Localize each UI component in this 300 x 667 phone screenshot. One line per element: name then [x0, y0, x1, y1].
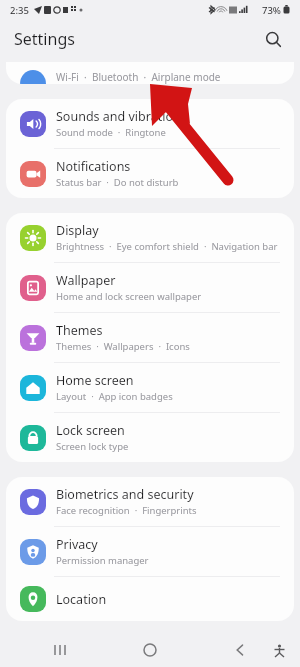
- button[interactable]: Sounds and vibration: [6, 99, 294, 148]
- button[interactable]: Recents: [45, 635, 75, 665]
- staticText: Themes · Wallpapers · Icons: [56, 340, 190, 353]
- staticText: Home screen: [56, 372, 134, 389]
- staticText: Layout · App icon badges: [56, 390, 173, 403]
- staticText: Permission manager: [56, 554, 149, 567]
- staticText: Themes: [56, 322, 103, 339]
- staticText: Status bar · Do not disturb: [56, 176, 179, 189]
- staticText: 2:35: [10, 4, 29, 17]
- button[interactable]: Location: [6, 577, 294, 621]
- staticText: Sound mode · Ringtone: [56, 126, 166, 139]
- staticText: Face recognition · Fingerprints: [56, 504, 197, 517]
- staticText: Sounds and vibration: [56, 108, 181, 125]
- staticText: Settings: [14, 28, 75, 50]
- staticText: Screen lock type: [56, 440, 129, 453]
- button[interactable]: Lock screen: [6, 413, 294, 462]
- staticText: Display: [56, 222, 99, 239]
- staticText: Home and lock screen wallpaper: [56, 290, 202, 303]
- staticText: Wallpaper: [56, 272, 116, 289]
- staticText: Privacy: [56, 536, 98, 553]
- button[interactable]: Display: [6, 213, 294, 262]
- staticText: Location: [56, 591, 107, 608]
- button[interactable]: Themes: [6, 313, 294, 362]
- button[interactable]: Privacy: [6, 527, 294, 576]
- button[interactable]: Search: [258, 24, 288, 54]
- button[interactable]: Back: [225, 635, 255, 665]
- staticText: Biometrics and security: [56, 486, 194, 503]
- staticText: Notifications: [56, 158, 131, 175]
- staticText: Lock screen: [56, 422, 125, 439]
- staticText: 73%: [262, 4, 281, 17]
- staticText: Brightness · Eye comfort shield · Naviga…: [56, 240, 278, 253]
- button[interactable]: Home screen: [6, 363, 294, 412]
- button[interactable]: Wallpaper: [6, 263, 294, 312]
- button[interactable]: Home: [135, 635, 165, 665]
- button[interactable]: Biometrics and security: [6, 477, 294, 526]
- button[interactable]: Notifications: [6, 149, 294, 198]
- staticText: Wi-Fi · Bluetooth · Airplane mode: [56, 70, 221, 84]
